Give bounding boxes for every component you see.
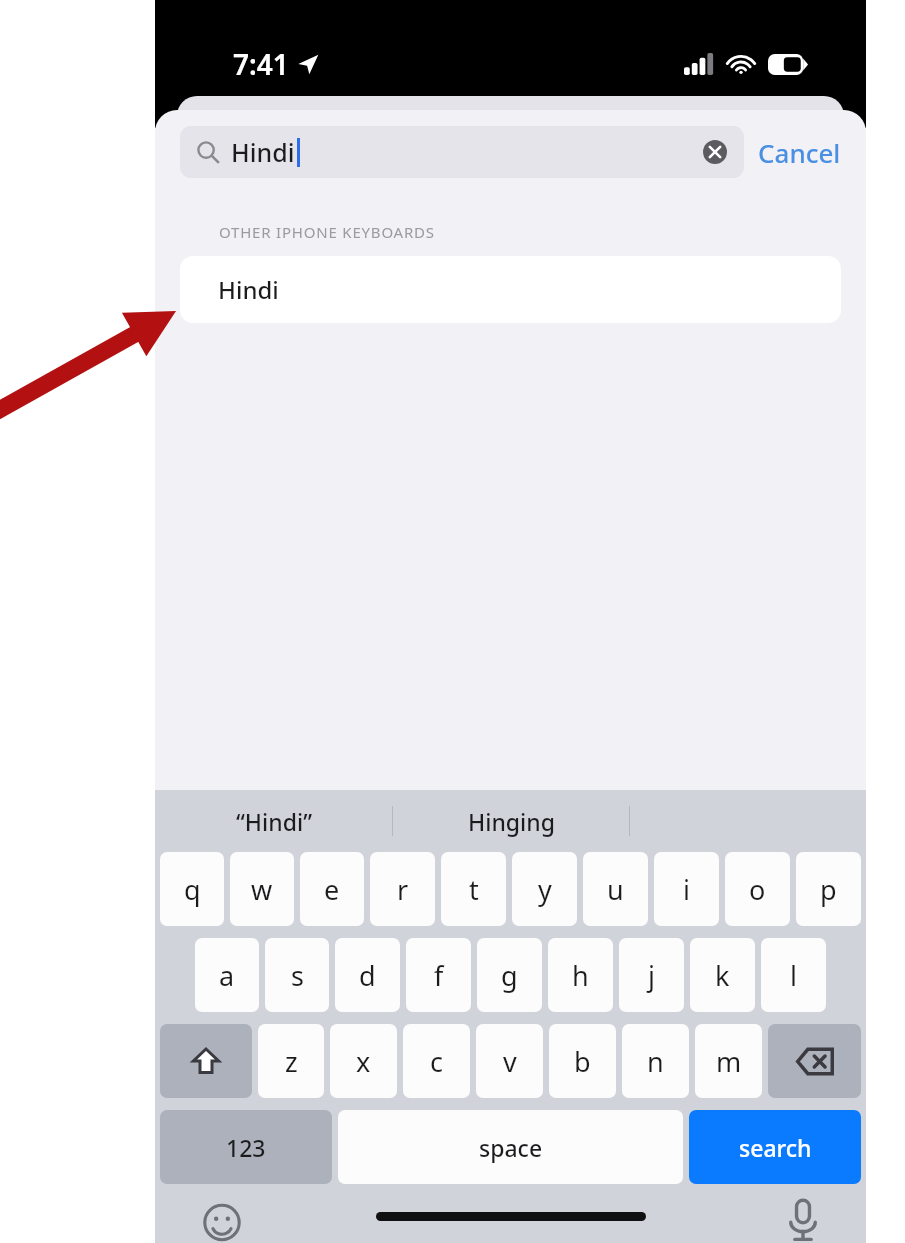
- staticText: z: [285, 1043, 298, 1080]
- staticText: n: [647, 1043, 664, 1080]
- button[interactable]: Shift: [160, 1024, 252, 1098]
- staticText: h: [572, 957, 589, 994]
- staticText: 7:41: [233, 45, 289, 83]
- staticText: “Hindi”: [236, 806, 312, 837]
- button[interactable]: z: [258, 1024, 324, 1098]
- button[interactable]: c: [403, 1024, 470, 1098]
- staticText: s: [291, 957, 304, 994]
- staticText: p: [820, 871, 837, 908]
- button[interactable]: y: [512, 852, 577, 926]
- button[interactable]: s: [265, 938, 329, 1012]
- button[interactable]: p: [796, 852, 861, 926]
- button[interactable]: l: [761, 938, 826, 1012]
- staticText: w: [251, 871, 273, 908]
- staticText: search: [739, 1132, 812, 1163]
- staticText: g: [501, 957, 518, 994]
- staticText: i: [683, 871, 690, 908]
- staticText: c: [430, 1043, 443, 1080]
- button[interactable]: Cancel: [758, 135, 841, 170]
- button[interactable]: search: [689, 1110, 861, 1184]
- button[interactable]: Emoji: [201, 1202, 243, 1243]
- button[interactable]: 123: [160, 1110, 332, 1184]
- staticText: y: [538, 871, 552, 908]
- button[interactable]: v: [476, 1024, 543, 1098]
- button[interactable]: space: [338, 1110, 683, 1184]
- staticText: k: [715, 957, 730, 994]
- staticText: space: [479, 1132, 543, 1163]
- button[interactable]: Dictation: [786, 1198, 820, 1243]
- staticText: m: [716, 1043, 742, 1080]
- staticText: o: [749, 871, 766, 908]
- staticText: a: [219, 957, 235, 994]
- button[interactable]: w: [230, 852, 294, 926]
- staticText: Hindi: [218, 273, 279, 306]
- staticText: 123: [226, 1132, 266, 1163]
- button[interactable]: b: [549, 1024, 616, 1098]
- staticText: j: [648, 957, 655, 994]
- button[interactable]: Hindi: [180, 256, 841, 323]
- button[interactable]: m: [695, 1024, 762, 1098]
- staticText: q: [184, 871, 201, 908]
- staticText: r: [397, 871, 409, 908]
- button[interactable]: Hindi: [180, 126, 744, 178]
- staticText: t: [469, 871, 479, 908]
- button[interactable]: i: [654, 852, 719, 926]
- button[interactable]: o: [725, 852, 790, 926]
- button[interactable]: k: [690, 938, 755, 1012]
- button[interactable]: a: [195, 938, 259, 1012]
- button[interactable]: g: [477, 938, 542, 1012]
- button[interactable]: u: [583, 852, 648, 926]
- button[interactable]: t: [441, 852, 506, 926]
- staticText: Hinging: [468, 806, 555, 837]
- staticText: e: [324, 871, 340, 908]
- button[interactable]: n: [622, 1024, 689, 1098]
- staticText: u: [607, 871, 624, 908]
- button[interactable]: f: [406, 938, 471, 1012]
- button[interactable]: q: [160, 852, 224, 926]
- staticText: v: [503, 1043, 517, 1080]
- staticText: OTHER IPHONE KEYBOARDS: [219, 222, 435, 242]
- button[interactable]: e: [300, 852, 364, 926]
- button[interactable]: Backspace: [768, 1024, 861, 1098]
- button[interactable]: r: [370, 852, 435, 926]
- button[interactable]: Clear text: [702, 139, 728, 165]
- staticText: Hindi: [231, 135, 295, 169]
- staticText: x: [356, 1043, 371, 1080]
- staticText: f: [434, 957, 444, 994]
- button[interactable]: d: [335, 938, 400, 1012]
- staticText: b: [574, 1043, 591, 1080]
- staticText: l: [790, 957, 797, 994]
- staticText: d: [359, 957, 376, 994]
- button[interactable]: h: [548, 938, 613, 1012]
- button[interactable]: j: [619, 938, 684, 1012]
- staticText: Cancel: [758, 135, 841, 170]
- button[interactable]: x: [330, 1024, 397, 1098]
